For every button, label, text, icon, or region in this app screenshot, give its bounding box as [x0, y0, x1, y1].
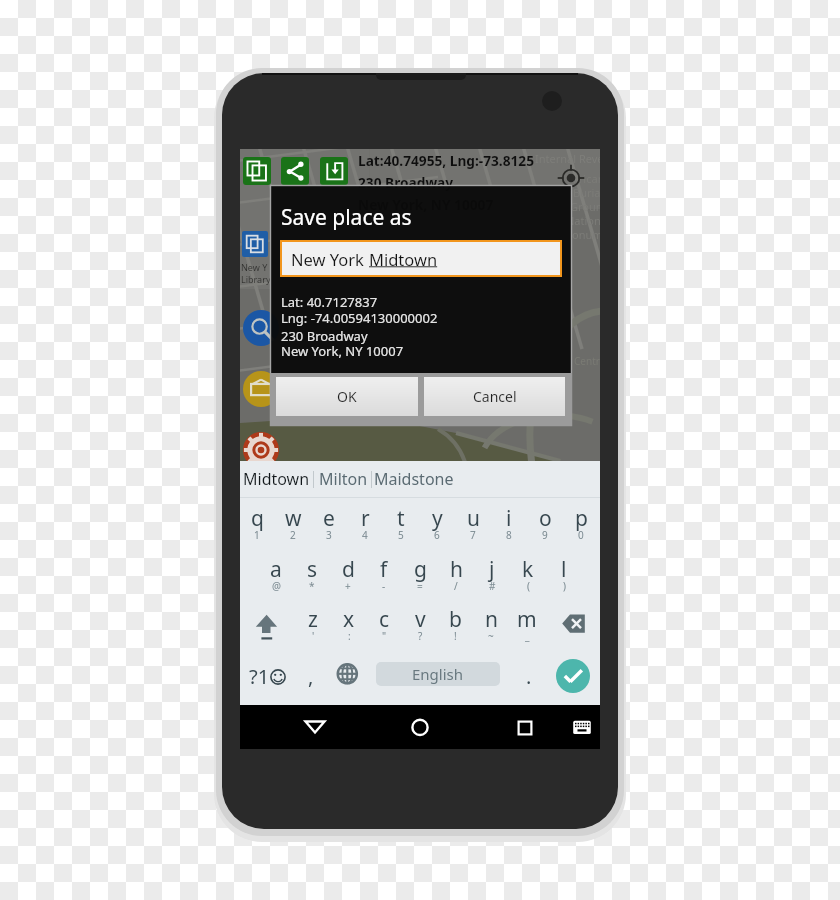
button[interactable]: x	[331, 605, 367, 653]
button[interactable]: f	[366, 555, 402, 603]
staticText: Lat: 40.7127837	[281, 293, 378, 311]
staticText: Save place as	[281, 203, 412, 232]
button[interactable]: Copy	[243, 157, 271, 185]
staticText: Cancel	[473, 387, 517, 406]
button[interactable]: h	[438, 555, 474, 603]
button[interactable]: n	[473, 605, 509, 653]
staticText: Library	[241, 273, 271, 285]
button[interactable]: o	[527, 504, 563, 552]
button[interactable]: Folders	[243, 371, 279, 407]
button[interactable]: Home	[400, 705, 440, 749]
button[interactable]: Comma	[296, 659, 326, 693]
staticText: 3	[326, 528, 332, 542]
staticText: g	[414, 555, 427, 584]
button[interactable]: Recent apps	[505, 705, 545, 749]
button[interactable]: e	[311, 504, 347, 552]
button[interactable]: Symbols	[244, 659, 290, 693]
button[interactable]: Shift	[246, 607, 290, 649]
button[interactable]: d	[330, 555, 366, 603]
button[interactable]: Cancel	[424, 377, 565, 416]
staticText: 230 Broadway	[281, 327, 368, 345]
button[interactable]: g	[402, 555, 438, 603]
staticText: z	[308, 605, 318, 634]
staticText: f	[380, 555, 388, 584]
button[interactable]: q	[239, 504, 275, 552]
button[interactable]: My location	[558, 165, 584, 191]
button[interactable]: English	[376, 662, 500, 686]
staticText: 0	[578, 528, 584, 542]
staticText: *	[309, 579, 315, 593]
button[interactable]: Midtown	[241, 463, 311, 495]
button[interactable]: Enter	[556, 659, 590, 693]
staticText: Milton	[319, 468, 368, 490]
staticText: 7	[470, 528, 476, 542]
staticText: New Y	[241, 261, 268, 273]
staticText: Midtown	[243, 468, 310, 490]
staticText: Monument	[562, 227, 600, 242]
staticText: p	[575, 504, 588, 533]
button[interactable]: Search	[243, 310, 279, 346]
staticText: :	[348, 629, 351, 643]
button[interactable]: Share	[281, 157, 309, 185]
staticText: African	[568, 171, 600, 186]
staticText: 8	[506, 528, 512, 542]
staticText: d	[342, 555, 355, 584]
staticText: "	[382, 629, 387, 643]
staticText: l	[561, 555, 567, 584]
staticText: +	[345, 579, 351, 593]
button[interactable]: Backspace	[554, 607, 594, 649]
button[interactable]: l	[546, 555, 582, 603]
staticText: i	[506, 504, 512, 533]
staticText: y	[432, 504, 443, 533]
staticText: h	[450, 555, 463, 584]
button[interactable]: p	[563, 504, 599, 552]
button[interactable]: k	[510, 555, 546, 603]
staticText: m	[517, 605, 537, 634]
button[interactable]: i	[491, 504, 527, 552]
staticText: #	[489, 579, 496, 593]
button[interactable]: Change language	[330, 657, 364, 691]
button[interactable]: Period	[514, 659, 544, 693]
button[interactable]: v	[402, 605, 438, 653]
button[interactable]: Copy place	[242, 231, 268, 257]
button[interactable]: m	[509, 605, 545, 653]
button[interactable]: Import	[320, 157, 348, 185]
staticText: OK	[337, 387, 357, 406]
staticText: New York	[291, 248, 369, 270]
button[interactable]: Settings	[243, 432, 279, 461]
button[interactable]: y	[419, 504, 455, 552]
staticText: New York, NY 10007	[281, 342, 404, 360]
button[interactable]: s	[294, 555, 330, 603]
staticText: 6	[434, 528, 440, 542]
button[interactable]: Hide keyboard	[562, 705, 602, 749]
button[interactable]: j	[474, 555, 510, 603]
staticText: 230 Broadway	[358, 173, 454, 192]
button[interactable]: a	[258, 555, 294, 603]
button[interactable]: z	[295, 605, 331, 653]
staticText: Burial	[573, 185, 600, 200]
staticText: Lat:40.74955, Lng:-73.8125	[358, 151, 534, 170]
staticText: a	[270, 555, 282, 584]
staticText: b	[449, 605, 462, 634]
staticText: )	[563, 579, 566, 593]
staticText: ~	[488, 629, 494, 643]
staticText: !	[454, 629, 457, 643]
button[interactable]: New York	[282, 242, 560, 275]
staticText: ?1	[249, 663, 270, 690]
button[interactable]: OK	[276, 377, 418, 416]
staticText: j	[489, 555, 495, 584]
button[interactable]: Maidstone	[374, 463, 454, 495]
staticText: New York, NY 10007	[358, 195, 494, 214]
button[interactable]: t	[383, 504, 419, 552]
staticText: English	[412, 664, 464, 684]
button[interactable]: c	[366, 605, 402, 653]
button[interactable]: r	[347, 504, 383, 552]
button[interactable]: w	[275, 504, 311, 552]
staticText: @	[272, 579, 281, 593]
staticText: 4	[362, 528, 368, 542]
button[interactable]: Back	[295, 705, 335, 749]
staticText: Maidstone	[374, 468, 454, 490]
button[interactable]: Milton	[316, 463, 371, 495]
button[interactable]: b	[437, 605, 473, 653]
button[interactable]: u	[455, 504, 491, 552]
